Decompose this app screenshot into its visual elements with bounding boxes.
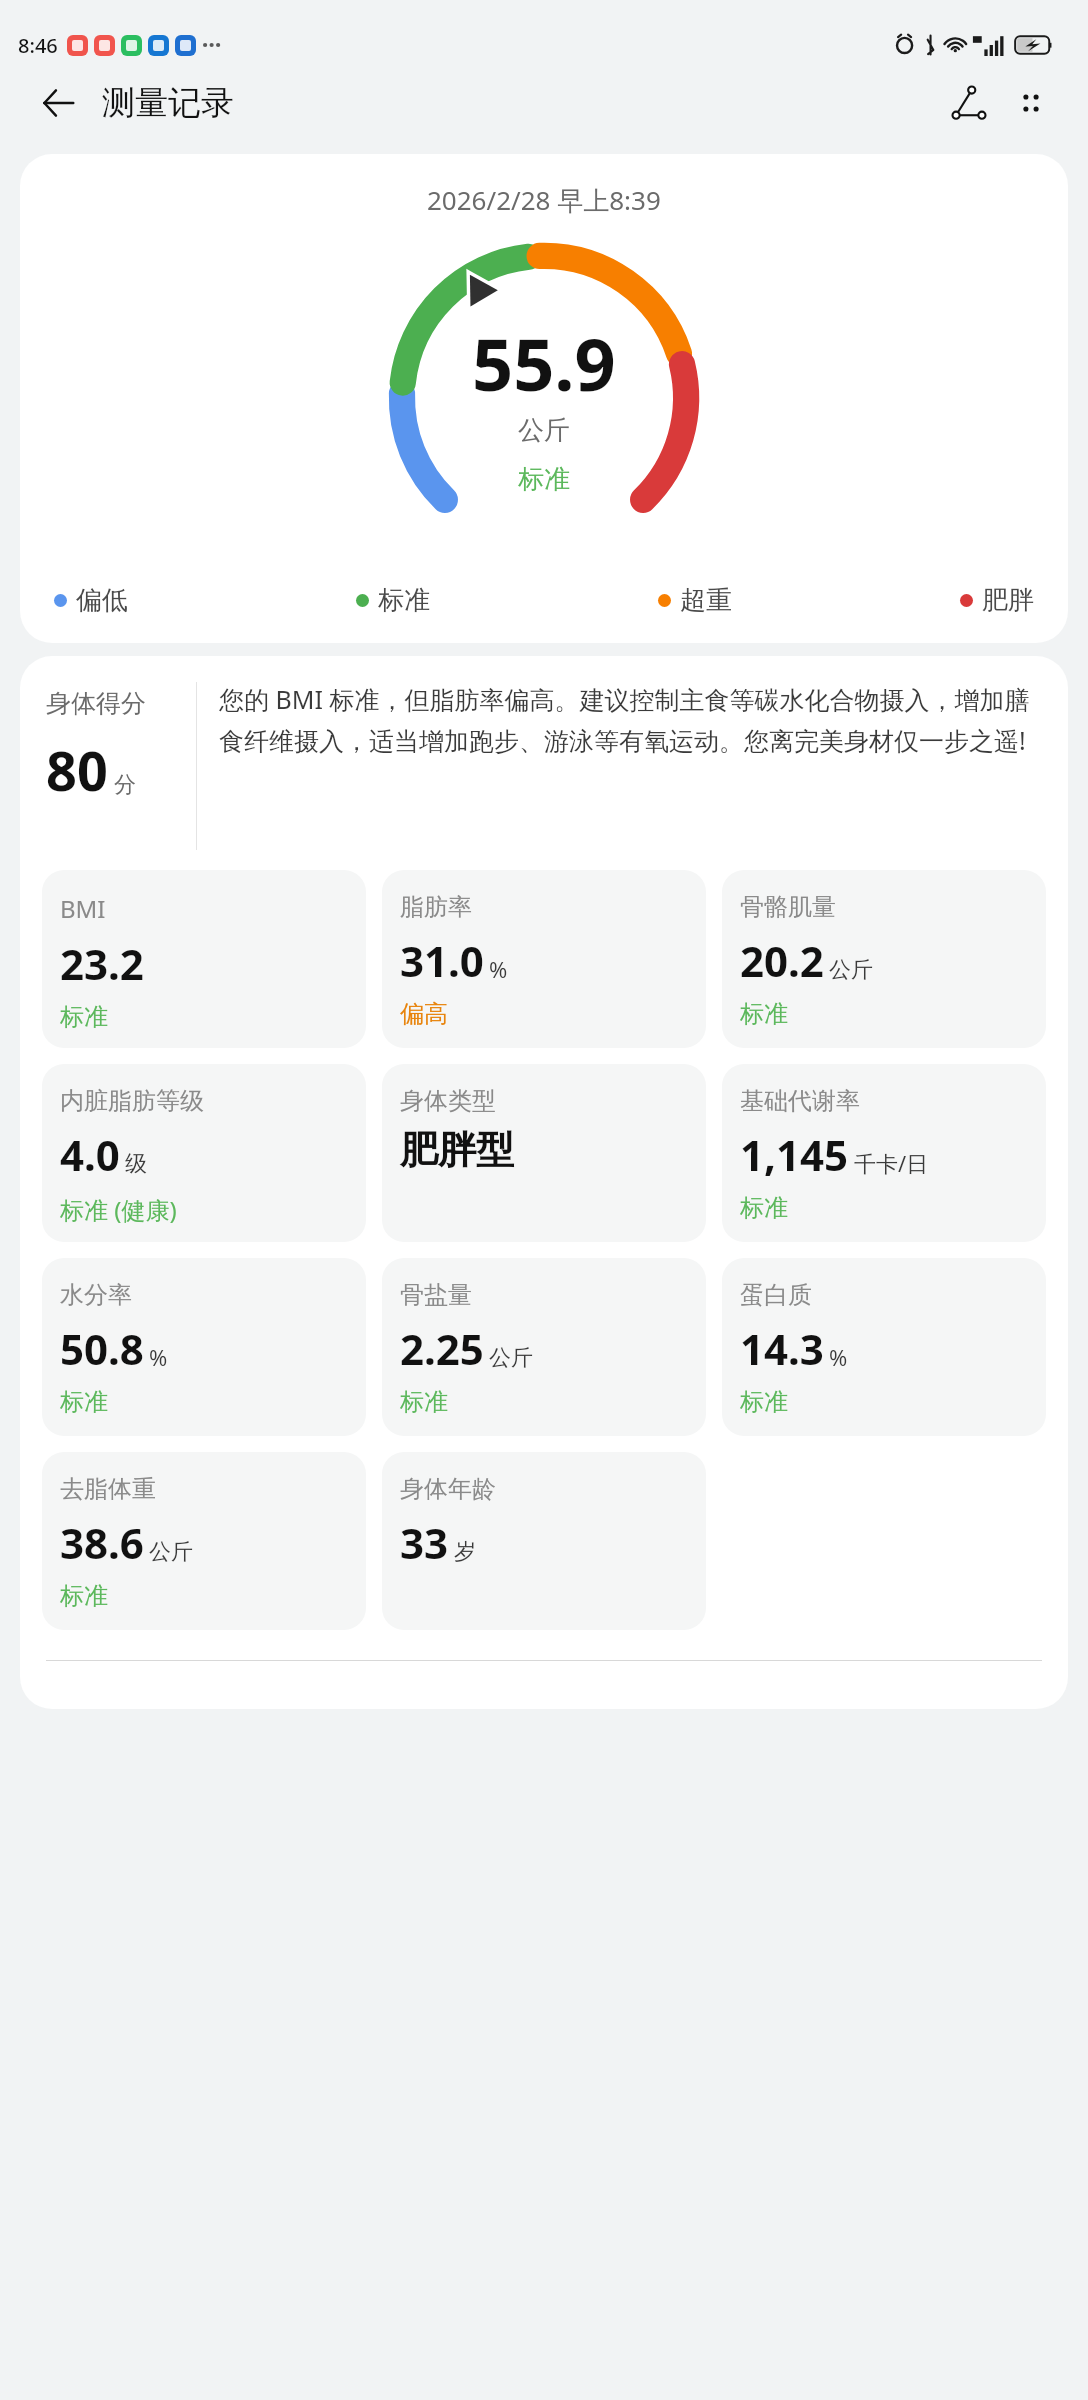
staticText: 38.6	[60, 1514, 144, 1571]
staticText: 偏低	[76, 584, 128, 617]
staticText: 标准	[740, 999, 788, 1029]
staticText: 标准	[60, 1387, 108, 1417]
staticText: 8:46	[18, 32, 58, 59]
button[interactable]: 2026/2/28 早上8:39	[20, 154, 1068, 643]
staticText: 岁	[454, 1538, 476, 1566]
staticText: 基础代谢率	[740, 1086, 860, 1116]
staticText: %	[829, 1342, 848, 1372]
staticText: 身体得分	[46, 688, 146, 719]
button[interactable]: 基础代谢率	[722, 1064, 1046, 1242]
staticText: 分	[114, 771, 136, 799]
staticText: 身体年龄	[400, 1474, 496, 1504]
staticText: 偏高	[400, 999, 448, 1029]
staticText: 标准 (健康)	[60, 1193, 177, 1226]
staticText: 1,145	[740, 1126, 849, 1183]
button[interactable]: BMI	[42, 870, 366, 1048]
staticText: %	[149, 1342, 168, 1372]
button[interactable]: 蛋白质	[722, 1258, 1046, 1436]
staticText: 33	[400, 1514, 449, 1571]
button[interactable]: More options	[1000, 72, 1062, 134]
staticText: 2026/2/28 早上8:39	[427, 182, 661, 218]
button[interactable]: 骨骼肌量	[722, 870, 1046, 1048]
staticText: 骨盐量	[400, 1280, 472, 1310]
staticText: 标准	[60, 1002, 108, 1032]
button[interactable]: 身体类型	[382, 1064, 706, 1242]
staticText: 身体类型	[400, 1086, 496, 1116]
staticText: 脂肪率	[400, 892, 472, 922]
staticText: 内脏脂肪等级	[60, 1086, 204, 1116]
staticText: 2.25	[400, 1320, 484, 1377]
staticText: 55.9	[472, 314, 616, 412]
staticText: 水分率	[60, 1280, 132, 1310]
staticText: 骨骼肌量	[740, 892, 836, 922]
staticText: 标准	[60, 1581, 108, 1611]
staticText: 蛋白质	[740, 1280, 812, 1310]
staticText: 公斤	[149, 1538, 193, 1566]
staticText: 去脂体重	[60, 1474, 156, 1504]
staticText: 公斤	[518, 414, 570, 447]
staticText: 20.2	[740, 932, 824, 989]
staticText: 23.2	[60, 935, 144, 992]
staticText: 50.8	[60, 1320, 144, 1377]
staticText: 31.0	[400, 932, 484, 989]
button[interactable]: 去脂体重	[42, 1452, 366, 1630]
staticText: %	[489, 954, 508, 984]
staticText: 测量记录	[102, 82, 234, 124]
staticText: 14.3	[740, 1320, 824, 1377]
staticText: 标准	[400, 1387, 448, 1417]
button[interactable]: 身体年龄	[382, 1452, 706, 1630]
staticText: 80	[46, 733, 108, 807]
staticText: 公斤	[829, 956, 873, 984]
staticText: 标准	[740, 1193, 788, 1223]
button[interactable]: Back	[30, 75, 86, 131]
staticText: BMI	[60, 892, 106, 925]
staticText: 标准	[518, 463, 570, 496]
staticText: 肥胖型	[400, 1126, 514, 1174]
button[interactable]: 水分率	[42, 1258, 366, 1436]
staticText: 您的 BMI 标准，但脂肪率偏高。建议控制主食等碳水化合物摄入，增加膳食纤维摄入…	[219, 682, 1044, 757]
button[interactable]: 骨盐量	[382, 1258, 706, 1436]
staticText: 标准	[378, 584, 430, 617]
staticText: 4.0	[60, 1126, 120, 1183]
staticText: 级	[125, 1150, 147, 1178]
button[interactable]: 脂肪率	[382, 870, 706, 1048]
button[interactable]: Share	[938, 72, 1000, 134]
staticText: 超重	[680, 584, 732, 617]
staticText: 肥胖	[982, 584, 1034, 617]
staticText: 千卡/日	[854, 1148, 929, 1178]
staticText: 标准	[740, 1387, 788, 1417]
button[interactable]: 内脏脂肪等级	[42, 1064, 366, 1242]
staticText: 公斤	[489, 1344, 533, 1372]
